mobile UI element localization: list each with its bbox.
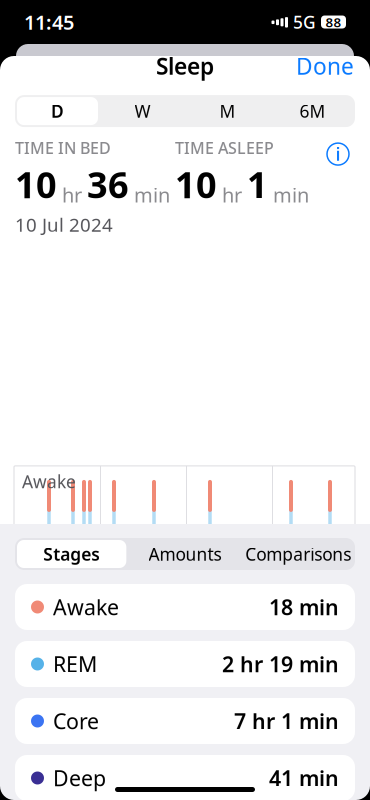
staticText: Stages — [43, 542, 100, 565]
staticText: 10 — [175, 160, 217, 208]
staticText: min — [268, 182, 309, 208]
staticText: Core — [22, 599, 60, 622]
staticText: 22:00 — [19, 728, 59, 749]
button[interactable]: About sleep data — [321, 137, 355, 171]
staticText: Done — [296, 51, 354, 81]
staticText: 10 Jul 2024 — [15, 212, 113, 237]
staticText: 1 — [247, 160, 268, 208]
staticText: 01:00 — [105, 728, 145, 749]
button[interactable]: Done — [280, 43, 370, 89]
staticText: 18 min — [269, 593, 339, 621]
staticText: Awake — [22, 470, 76, 493]
button[interactable]: M — [185, 95, 270, 127]
staticText: D — [51, 100, 64, 123]
staticText: 07:00 — [277, 728, 317, 749]
staticText: 2 hr 19 min — [222, 650, 339, 678]
staticText: REM — [53, 650, 97, 678]
staticText: 04:00 — [191, 728, 231, 749]
staticText: TIME IN BED — [15, 137, 111, 158]
staticText: 6M — [299, 100, 325, 123]
staticText: 11:45 — [24, 9, 74, 35]
button[interactable]: Awake — [15, 584, 355, 630]
staticText: Awake — [53, 593, 119, 621]
staticText: Deep — [22, 663, 66, 686]
button[interactable]: Comparisons — [242, 538, 355, 570]
staticText: W — [134, 100, 150, 123]
button[interactable]: REM — [15, 641, 355, 687]
button[interactable]: Core — [15, 698, 355, 744]
button[interactable]: Deep — [15, 755, 355, 800]
staticText: 10 — [15, 160, 57, 208]
staticText: Core — [53, 707, 99, 735]
staticText: 5G — [293, 10, 316, 33]
button[interactable]: 6M — [270, 95, 355, 127]
staticText: Comparisons — [245, 542, 351, 565]
button[interactable]: Amounts — [128, 538, 242, 570]
staticText: Amounts — [148, 542, 221, 565]
staticText: Sleep — [156, 51, 214, 81]
staticText: TIME ASLEEP — [175, 137, 274, 158]
staticText: 36 — [87, 160, 129, 208]
staticText: hr — [57, 182, 87, 208]
button[interactable]: W — [100, 95, 185, 127]
staticText: i — [335, 143, 340, 166]
staticText: 41 min — [269, 764, 339, 792]
staticText: REM — [22, 534, 59, 557]
staticText: 88 — [325, 13, 341, 31]
staticText: 7 hr 1 min — [234, 707, 339, 735]
staticText: M — [219, 100, 235, 123]
staticText: min — [129, 182, 170, 208]
staticText: hr — [217, 182, 247, 208]
button[interactable]: D — [15, 95, 100, 127]
button[interactable]: Stages — [15, 538, 128, 570]
staticText: Deep — [53, 764, 106, 792]
